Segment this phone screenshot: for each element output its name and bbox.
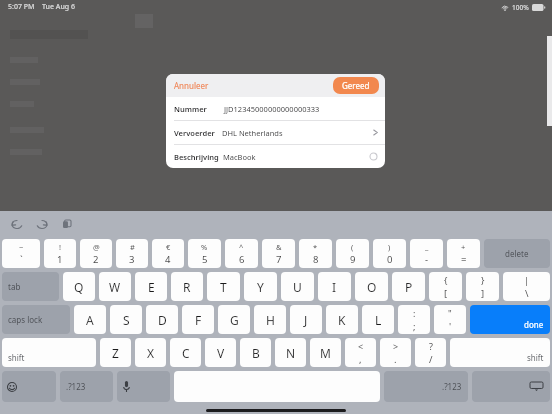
button[interactable]: # [116,239,148,268]
button[interactable]: Beschrijving [166,145,385,168]
button[interactable]: Paste [58,215,76,233]
button[interactable]: % [188,239,221,268]
button[interactable]: A [74,305,106,334]
button[interactable]: X [135,338,166,367]
button[interactable]: " [434,305,466,334]
staticText: U [293,279,302,295]
button[interactable]: Clear [369,152,378,161]
staticText: Beschrijving [174,152,219,162]
staticText: T [220,279,227,295]
button[interactable]: C [170,338,201,367]
button[interactable]: } [466,272,499,301]
button[interactable]: Annuleer [166,76,215,95]
button[interactable]: @ [80,239,112,268]
button[interactable]: ^ [225,239,258,268]
button[interactable]: E [135,272,167,301]
button[interactable]: .?123 [384,371,468,402]
staticText: JJD12345000000000000333 [224,104,378,114]
button[interactable]: ) [373,239,406,268]
button[interactable]: U [281,272,314,301]
staticText: delete [505,248,529,259]
button[interactable]: _ [410,239,443,268]
button[interactable]: Q [63,272,95,301]
staticText: F [195,312,202,328]
staticText: ( [351,242,354,252]
staticText: N [286,345,296,361]
staticText: C [182,345,190,361]
button[interactable]: Hide keyboard [472,371,550,402]
button[interactable]: H [254,305,286,334]
button[interactable]: J [290,305,322,334]
button[interactable]: € [152,239,184,268]
button[interactable]: .?123 [60,371,113,402]
button[interactable]: I [318,272,351,301]
button[interactable]: K [326,305,358,334]
staticText: ' [449,320,452,333]
button[interactable]: W [99,272,131,301]
button[interactable]: | [503,272,550,301]
staticText: D [158,312,167,328]
staticText: _ [425,242,429,252]
button[interactable]: shift [450,338,550,367]
staticText: 5:07 PM [8,2,35,12]
button[interactable]: M [310,338,341,367]
button[interactable]: ? [415,338,446,367]
button[interactable]: Redo [33,215,51,233]
staticText: % [201,242,208,252]
button[interactable]: F [182,305,214,334]
button[interactable]: & [262,239,295,268]
staticText: H [266,312,275,328]
staticText: J [304,312,308,328]
button[interactable]: Dictate [117,371,170,402]
staticText: 6 [239,253,245,266]
button[interactable]: shift [2,338,96,367]
button[interactable]: tab [2,272,59,301]
button[interactable]: ~ [2,239,40,268]
button[interactable]: Undo [8,215,26,233]
staticText: : [413,307,416,319]
button[interactable]: : [398,305,430,334]
staticText: < [358,340,364,352]
button[interactable]: Gereed [333,77,379,94]
button[interactable]: S [110,305,142,334]
button[interactable]: caps lock [2,305,70,334]
staticText: Z [112,345,119,361]
staticText: ) [388,242,391,252]
staticText: Vervoerder [174,128,215,138]
staticText: Y [257,279,264,295]
button[interactable]: D [146,305,178,334]
button[interactable]: L [362,305,394,334]
button[interactable] [2,371,56,402]
button[interactable]: O [355,272,388,301]
button[interactable]: G [218,305,250,334]
button[interactable]: N [275,338,306,367]
button[interactable]: P [392,272,425,301]
staticText: { [444,274,448,286]
button[interactable]: < [345,338,376,367]
button[interactable]: Vervoerder [166,121,385,144]
button[interactable]: * [299,239,332,268]
staticText: I [332,279,337,295]
button[interactable]: V [205,338,236,367]
button[interactable]: B [240,338,271,367]
button[interactable]: Y [244,272,277,301]
staticText: [ [444,287,448,300]
button[interactable]: Nummer [166,97,385,120]
staticText: tab [8,281,21,292]
staticText: 2 [93,253,99,266]
button[interactable]: delete [484,239,550,268]
button[interactable]: ( [336,239,369,268]
button[interactable]: T [207,272,240,301]
button[interactable]: Z [100,338,131,367]
button[interactable]: ! [44,239,76,268]
button[interactable]: { [429,272,462,301]
staticText: E [148,279,155,295]
button[interactable]: > [380,338,411,367]
button[interactable]: done [470,305,550,334]
button[interactable]: R [171,272,203,301]
staticText: | [524,274,529,286]
staticText: Q [74,279,84,295]
staticText: 100% [512,3,529,12]
button[interactable]: + [447,239,480,268]
